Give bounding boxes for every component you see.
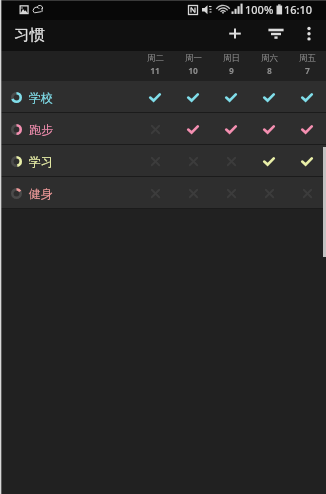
staticText: 周一 <box>185 53 202 64</box>
button[interactable]: Not completed <box>136 177 174 209</box>
staticText: 100% <box>245 2 274 17</box>
staticText: 周日 <box>223 53 240 64</box>
staticText: 10 <box>188 65 198 77</box>
button[interactable]: More options <box>293 20 325 51</box>
button[interactable]: Completed <box>212 81 250 113</box>
staticText: 8 <box>267 65 272 77</box>
button[interactable]: Completed <box>288 81 326 113</box>
button[interactable]: Completed <box>174 113 212 145</box>
button[interactable]: Not completed <box>250 177 288 209</box>
button[interactable]: Not completed <box>288 177 326 209</box>
staticText: 周二 <box>147 53 164 64</box>
button[interactable]: Not completed <box>174 145 212 177</box>
button[interactable]: Not completed <box>174 177 212 209</box>
button[interactable]: 跑步 <box>0 113 326 145</box>
staticText: 跑步 <box>29 122 53 137</box>
button[interactable]: Completed <box>250 113 288 145</box>
button[interactable]: 学校 <box>0 81 326 113</box>
staticText: 16:10 <box>284 2 313 17</box>
button[interactable]: Completed <box>174 81 212 113</box>
button[interactable]: Completed <box>250 145 288 177</box>
staticText: 健身 <box>29 186 53 201</box>
button[interactable]: Not completed <box>212 145 250 177</box>
staticText: 习惯 <box>14 25 45 45</box>
staticText: 11 <box>150 65 160 77</box>
button[interactable]: Add habit <box>219 20 251 51</box>
staticText: 9 <box>229 65 234 77</box>
button[interactable]: Completed <box>288 145 326 177</box>
staticText: 周五 <box>299 53 316 64</box>
button[interactable]: Completed <box>212 113 250 145</box>
staticText: 学习 <box>29 154 53 169</box>
button[interactable]: Not completed <box>136 145 174 177</box>
button[interactable]: Not completed <box>212 177 250 209</box>
staticText: 学校 <box>29 90 53 105</box>
button[interactable]: Completed <box>250 81 288 113</box>
button[interactable]: Completed <box>288 113 326 145</box>
button[interactable]: 健身 <box>0 177 326 209</box>
button[interactable]: 学习 <box>0 145 326 177</box>
button[interactable]: Not completed <box>136 113 174 145</box>
staticText: 周六 <box>261 53 278 64</box>
button[interactable]: Completed <box>136 81 174 113</box>
button[interactable]: Filter <box>260 20 292 51</box>
staticText: 7 <box>305 65 310 77</box>
